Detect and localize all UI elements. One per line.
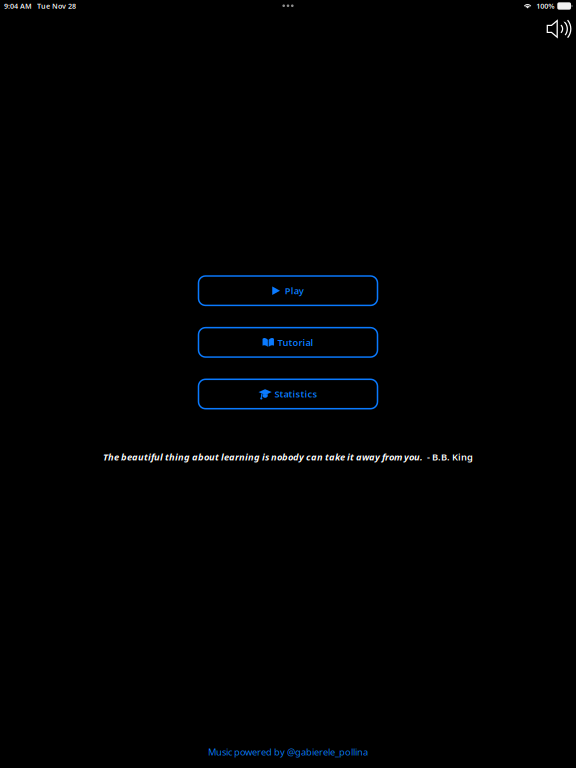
button[interactable]: Music powered by @gabierele_pollina xyxy=(196,743,380,761)
button[interactable]: Tutorial xyxy=(198,328,377,357)
staticText: 100% xyxy=(536,1,554,11)
staticText: Music powered by @gabierele_pollina xyxy=(208,746,368,758)
staticText: The beautiful thing about learning is no… xyxy=(103,451,473,463)
staticText: Play xyxy=(285,284,304,297)
button[interactable]: Statistics xyxy=(198,379,377,409)
staticText: Tutorial xyxy=(277,336,313,349)
staticText: Tue Nov 28 xyxy=(37,1,76,11)
staticText: 9:04 AM xyxy=(4,1,32,11)
button[interactable]: Mute sound xyxy=(536,15,576,42)
staticText: Statistics xyxy=(274,388,317,400)
button[interactable]: Play xyxy=(198,276,377,305)
